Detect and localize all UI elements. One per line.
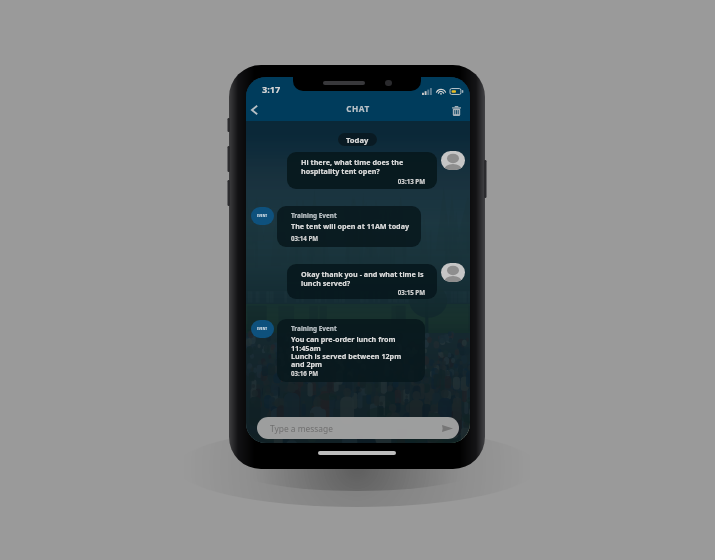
button[interactable]: Training Event (277, 319, 425, 382)
staticText: Okay thank you - and what time is lunch … (301, 269, 424, 288)
staticText: Training Event (291, 211, 337, 220)
button[interactable]: Delete conversation (444, 99, 468, 123)
staticText: Today (346, 135, 369, 145)
button[interactable]: Okay thank you - and what time is lunch … (287, 264, 437, 299)
staticText: EVENT (257, 214, 268, 218)
button[interactable]: Training Event (251, 207, 274, 225)
staticText: 03:14 PM (291, 234, 319, 242)
button[interactable]: Your avatar (441, 151, 465, 170)
staticText: 3:17 (262, 83, 281, 96)
staticText: The tent will open at 11AM today (291, 221, 410, 231)
button[interactable]: Type a message (257, 417, 459, 439)
button[interactable]: Send (440, 421, 454, 435)
staticText: Type a message (270, 423, 333, 434)
staticText: 03:13 PM (287, 177, 425, 185)
staticText: Training Event (291, 324, 337, 333)
staticText: 03:15 PM (287, 288, 425, 296)
staticText: CHAT (246, 103, 470, 114)
staticText: 03:16 PM (291, 369, 319, 377)
button[interactable]: Hi there, what time does the hospitality… (287, 152, 437, 189)
button[interactable]: Today (338, 133, 377, 146)
staticText: Hi there, what time does the hospitality… (301, 157, 404, 176)
button[interactable]: Your avatar (441, 263, 465, 282)
button[interactable]: Back (246, 98, 266, 122)
staticText: You can pre-order lunch from 11:45am Lun… (291, 334, 402, 369)
button[interactable]: Training Event (277, 206, 421, 247)
staticText: EVENT (257, 327, 268, 331)
button[interactable]: Training Event (251, 320, 274, 338)
